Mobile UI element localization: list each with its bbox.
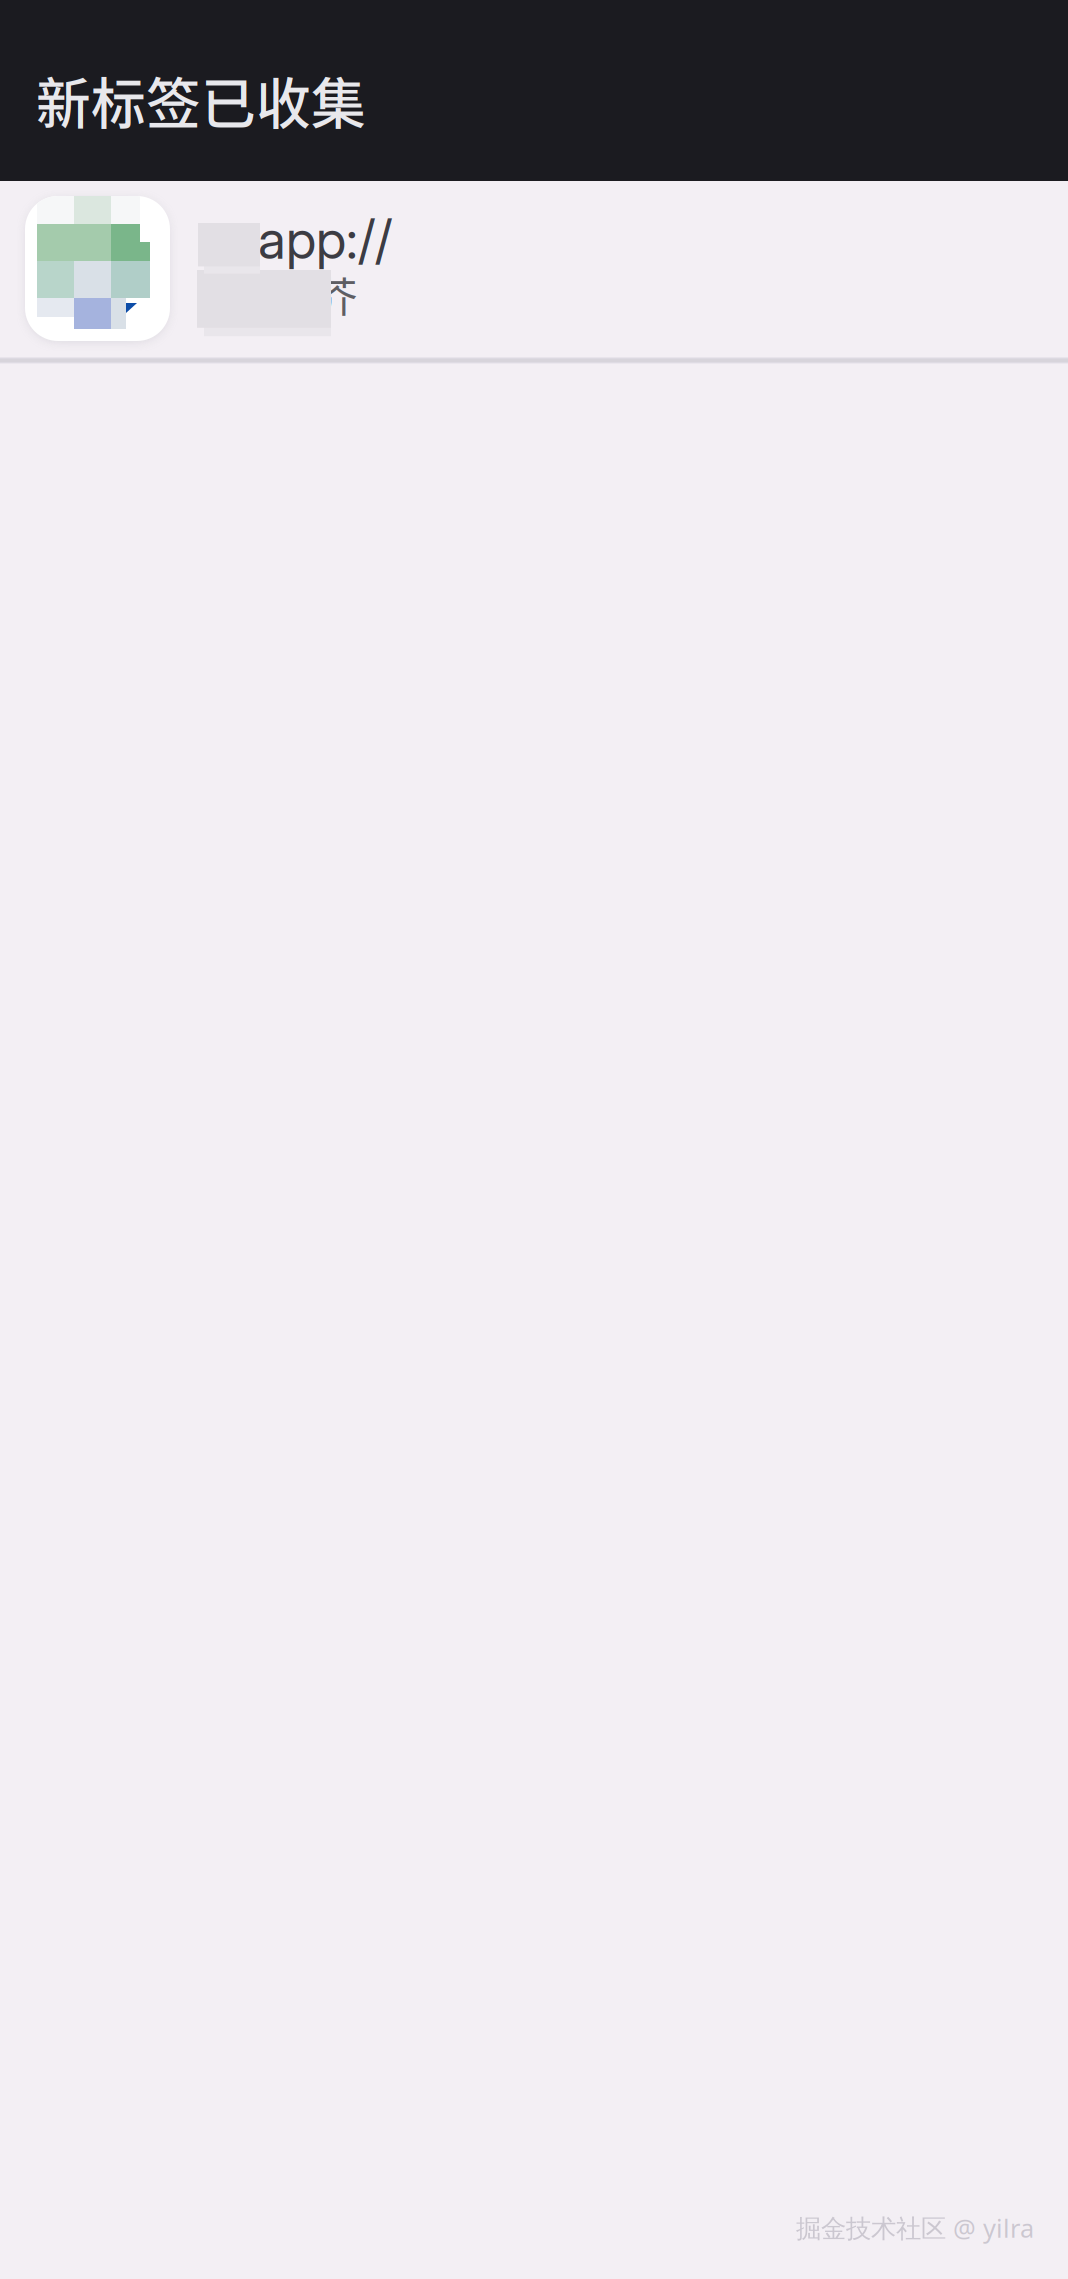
button[interactable]: 芥	[0, 181, 1068, 357]
staticText: 新标签已收集	[36, 60, 366, 139]
staticText: 芥	[316, 264, 357, 324]
staticText: 掘金技术社区 @ yilra	[796, 2211, 1034, 2245]
staticText: app://	[258, 207, 392, 271]
